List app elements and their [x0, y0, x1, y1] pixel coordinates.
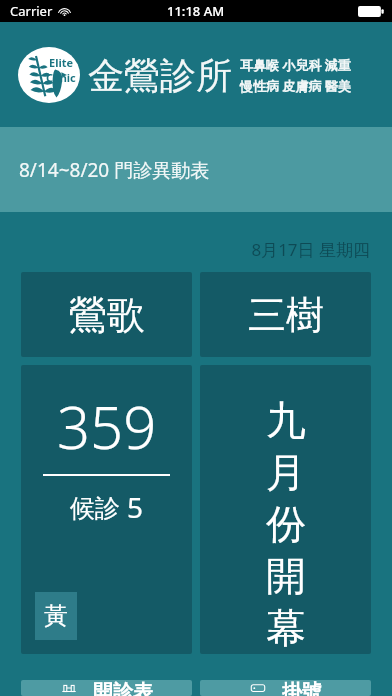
staticText: 金鶯診所	[88, 53, 232, 98]
staticText: Clinic	[46, 70, 76, 85]
staticText: 份	[266, 499, 306, 549]
staticText: 耳鼻喉 小兒科 減重	[240, 56, 351, 74]
staticText: 359	[57, 387, 157, 466]
staticText: 候診	[70, 490, 127, 524]
staticText: 三樹	[248, 291, 324, 339]
button[interactable]: 開診表	[21, 680, 192, 696]
staticText: 8/14~8/20 門診異動表	[19, 157, 210, 183]
button[interactable]: 三樹	[200, 272, 371, 357]
staticText: 鶯歌	[69, 291, 145, 339]
staticText: 5	[127, 488, 144, 526]
button[interactable]: 鶯歌	[21, 272, 192, 357]
staticText: 慢性病 皮膚病 醫美	[240, 77, 351, 95]
staticText: 掛號	[282, 680, 322, 696]
staticText: Elite	[49, 55, 74, 70]
staticText: 月	[266, 447, 306, 497]
button[interactable]: 8/14~8/20 門診異動表	[0, 127, 392, 212]
staticText: 黃	[44, 601, 68, 631]
button[interactable]: 九	[200, 365, 371, 654]
staticText: 8月17日 星期四	[0, 238, 370, 261]
button[interactable]: 359	[21, 365, 192, 654]
button[interactable]: 掛號	[200, 680, 371, 696]
staticText: Carrier	[10, 2, 53, 20]
button[interactable]: 黃	[35, 592, 77, 640]
staticText: 開診表	[93, 680, 153, 696]
staticText: 九	[266, 395, 306, 445]
staticText: 幕	[266, 603, 306, 653]
other: 掛號	[250, 680, 276, 696]
staticText: 11:18 AM	[167, 2, 225, 20]
other: 開診表	[61, 680, 87, 696]
staticText: 開	[266, 551, 306, 601]
